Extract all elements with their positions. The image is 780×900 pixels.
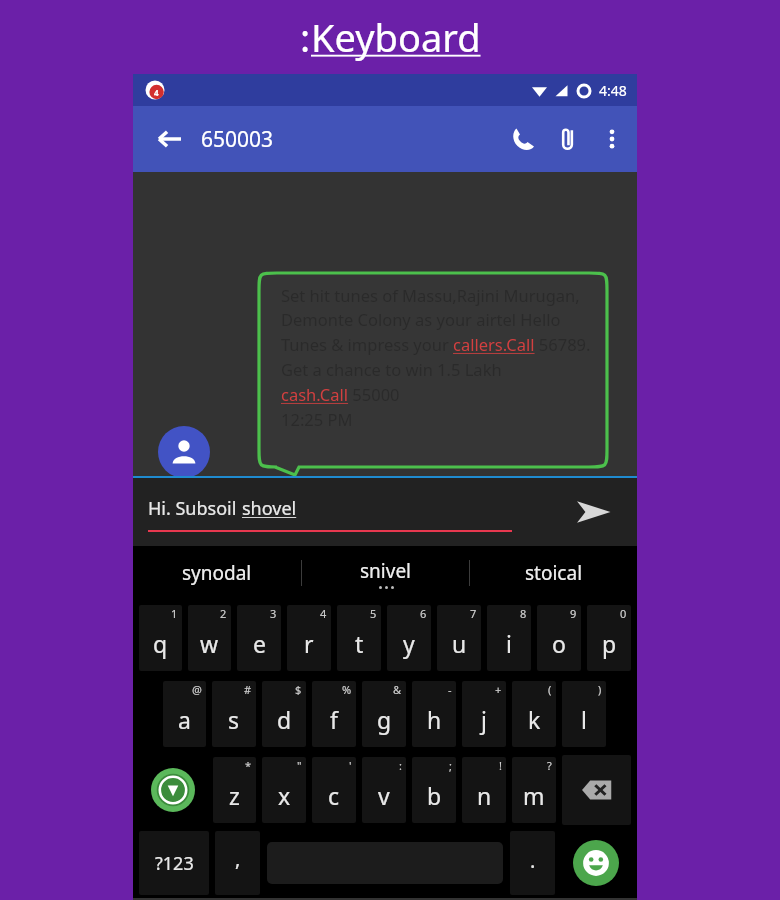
staticText: i <box>506 628 512 659</box>
staticText: m <box>523 780 545 811</box>
button[interactable]: Back <box>147 117 191 161</box>
staticText: s <box>228 704 240 735</box>
button[interactable]: : <box>362 757 406 823</box>
staticText: , <box>235 845 241 872</box>
button[interactable]: & <box>362 681 406 747</box>
staticText: x <box>278 780 291 811</box>
button[interactable]: % <box>312 681 356 747</box>
staticText: synodal <box>182 560 252 586</box>
button[interactable]: . <box>510 831 555 895</box>
staticText: d <box>277 704 292 735</box>
button[interactable]: ( <box>512 681 556 747</box>
staticText: stoical <box>525 560 583 586</box>
staticText: ! <box>499 758 502 773</box>
button[interactable]: More options <box>591 116 633 162</box>
staticText: 4:48 <box>599 81 627 100</box>
staticText: u <box>452 628 467 659</box>
staticText: + <box>495 682 502 697</box>
staticText: " <box>297 758 302 773</box>
staticText: e <box>253 628 266 659</box>
button[interactable]: ?123 <box>139 831 209 895</box>
staticText: Set hit tunes of Massu,Rajini Murugan, D… <box>281 284 593 431</box>
button[interactable]: 9 <box>537 605 581 671</box>
button[interactable]: 0 <box>587 605 631 671</box>
button[interactable]: " <box>262 757 306 823</box>
staticText: 4 <box>320 606 327 621</box>
button[interactable]: 4 <box>287 605 331 671</box>
staticText: 1 <box>171 606 178 621</box>
staticText: f <box>330 704 338 735</box>
staticText: $ <box>295 682 302 697</box>
staticText: v <box>378 780 390 811</box>
button[interactable]: 3 <box>237 605 281 671</box>
button[interactable]: Backspace <box>562 755 631 825</box>
button[interactable]: Send <box>567 486 619 538</box>
staticText: snivel <box>360 558 412 584</box>
staticText: l <box>581 704 587 735</box>
staticText: Hi. Subsoil <box>148 496 242 521</box>
button[interactable]: ) <box>562 681 606 747</box>
staticText: w <box>200 628 219 659</box>
staticText: o <box>552 628 566 659</box>
staticText: : <box>399 758 402 773</box>
staticText: Keyboard <box>311 11 481 63</box>
staticText: # <box>244 682 252 697</box>
button[interactable]: ! <box>462 757 506 823</box>
staticText: ' <box>349 758 352 773</box>
staticText: 8 <box>520 606 527 621</box>
staticText: z <box>229 780 240 811</box>
button[interactable]: 6 <box>387 605 431 671</box>
staticText: & <box>393 682 402 697</box>
button[interactable]: 5 <box>337 605 381 671</box>
button[interactable]: stoical <box>470 546 637 600</box>
staticText: r <box>304 628 314 659</box>
staticText: 3 <box>270 606 277 621</box>
button[interactable]: 7 <box>437 605 481 671</box>
staticText: p <box>602 628 617 659</box>
button[interactable]: - <box>412 681 456 747</box>
button[interactable]: Shift <box>136 752 210 828</box>
button[interactable]: 8 <box>487 605 531 671</box>
staticText: shovel <box>242 496 297 521</box>
button[interactable]: synodal <box>133 546 301 600</box>
staticText: : <box>300 11 311 63</box>
staticText: 2 <box>220 606 227 621</box>
staticText: 6 <box>420 606 427 621</box>
staticText: a <box>178 704 191 735</box>
button[interactable]: snivel <box>302 546 469 600</box>
staticText: h <box>427 704 442 735</box>
staticText: g <box>377 704 392 735</box>
staticText: ? <box>547 758 552 773</box>
button[interactable]: 2 <box>188 605 231 671</box>
button[interactable]: $ <box>262 681 306 747</box>
staticText: @ <box>192 682 202 697</box>
button[interactable]: 1 <box>139 605 182 671</box>
staticText: k <box>528 704 541 735</box>
button[interactable]: ; <box>412 757 456 823</box>
staticText: . <box>530 847 536 874</box>
staticText: c <box>328 780 340 811</box>
staticText: t <box>355 628 364 659</box>
staticText: ) <box>598 682 602 697</box>
button[interactable]: , <box>215 831 260 895</box>
button[interactable]: ? <box>512 757 556 823</box>
staticText: 7 <box>470 606 477 621</box>
button[interactable]: + <box>462 681 506 747</box>
button[interactable]: # <box>212 681 256 747</box>
staticText: * <box>245 758 252 773</box>
staticText: n <box>477 780 492 811</box>
staticText: ( <box>548 682 552 697</box>
button[interactable]: Call <box>499 116 545 162</box>
staticText: - <box>448 682 452 697</box>
staticText: y <box>403 628 415 659</box>
button[interactable]: Attach <box>545 116 591 162</box>
button[interactable]: Emoji <box>558 828 634 898</box>
button[interactable]: ' <box>312 757 356 823</box>
staticText: j <box>481 704 487 735</box>
button[interactable]: @ <box>163 681 206 747</box>
button[interactable]: * <box>213 757 256 823</box>
staticText: 9 <box>570 606 577 621</box>
staticText: q <box>153 628 168 659</box>
staticText: 0 <box>620 606 627 621</box>
